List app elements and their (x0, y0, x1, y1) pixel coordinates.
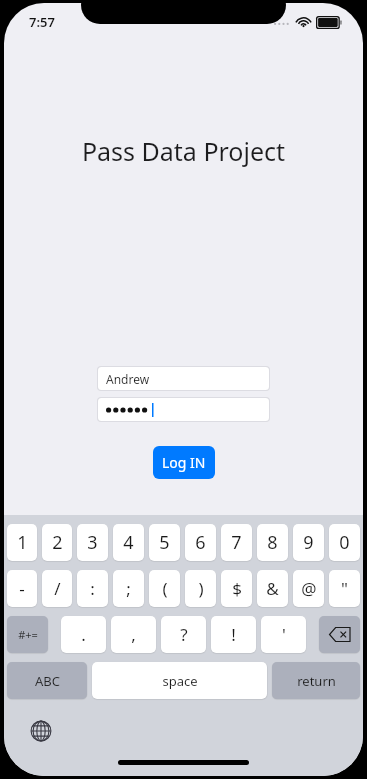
staticText: 3 (87, 530, 98, 555)
staticText: 9 (303, 530, 314, 555)
staticText: Pass Data Project (4, 134, 363, 168)
staticText: 8 (267, 530, 278, 555)
button[interactable]: ABC (7, 662, 87, 699)
button[interactable]: Log IN (153, 446, 215, 479)
button[interactable]: 8 (257, 524, 288, 561)
button[interactable]: 2 (42, 524, 72, 561)
staticText: / (54, 577, 61, 600)
button[interactable]: - (7, 570, 37, 607)
button[interactable]: 5 (149, 524, 180, 561)
button[interactable]: : (77, 570, 108, 607)
staticText: 2 (52, 530, 63, 555)
button[interactable]: ; (113, 570, 144, 607)
staticText: 7 (231, 530, 242, 555)
button[interactable]: 6 (185, 524, 216, 561)
staticText: ! (231, 623, 236, 646)
staticText: 5 (159, 530, 170, 555)
staticText: space (162, 672, 198, 690)
button[interactable]: , (111, 616, 156, 653)
staticText: ABC (35, 672, 60, 690)
staticText: 1 (17, 530, 28, 555)
button[interactable]: / (42, 570, 72, 607)
staticText: ( (162, 577, 168, 600)
button[interactable]: 1 (7, 524, 37, 561)
staticText: Andrew (106, 371, 150, 387)
button[interactable]: 4 (113, 524, 144, 561)
staticText: ' (282, 623, 286, 646)
staticText: ; (126, 577, 131, 600)
button[interactable]: 9 (293, 524, 324, 561)
button[interactable]: ' (261, 616, 306, 653)
button[interactable]: $ (221, 570, 252, 607)
button[interactable]: ? (161, 616, 206, 653)
staticText: . (81, 623, 86, 646)
button[interactable] (98, 398, 269, 421)
staticText: ) (198, 577, 204, 600)
button[interactable]: & (257, 570, 288, 607)
button[interactable]: Change keyboard (28, 718, 54, 744)
staticText: 0 (339, 530, 350, 555)
staticText: @ (301, 577, 317, 600)
button[interactable]: 3 (77, 524, 108, 561)
staticText: 4 (123, 530, 134, 555)
button[interactable]: 0 (329, 524, 360, 561)
staticText: #+= (18, 627, 38, 642)
button[interactable]: . (61, 616, 106, 653)
button[interactable]: ! (211, 616, 256, 653)
button[interactable]: return (272, 662, 360, 699)
button[interactable]: space (92, 662, 267, 699)
staticText: & (266, 577, 279, 600)
button[interactable]: " (329, 570, 360, 607)
staticText: - (19, 577, 25, 600)
staticText: $ (232, 577, 242, 600)
button[interactable]: Backspace (319, 616, 360, 653)
button[interactable]: Andrew (98, 367, 269, 390)
staticText: ? (180, 623, 188, 646)
button[interactable]: 7 (221, 524, 252, 561)
staticText: " (341, 577, 348, 600)
staticText: return (297, 672, 336, 690)
button[interactable]: ) (185, 570, 216, 607)
staticText: 7:57 (29, 13, 55, 31)
button[interactable]: #+= (7, 616, 48, 653)
staticText: , (131, 623, 136, 646)
staticText: 6 (195, 530, 206, 555)
button[interactable]: @ (293, 570, 324, 607)
staticText: : (90, 577, 95, 600)
staticText: Log IN (162, 453, 206, 472)
button[interactable]: ( (149, 570, 180, 607)
